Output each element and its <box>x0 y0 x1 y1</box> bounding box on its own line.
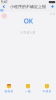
staticText: 设置 <box>49 12 55 15</box>
staticText: 已完成上报 <box>20 31 35 34</box>
staticText: 一般 <box>25 90 31 93</box>
button[interactable]: Back to app <box>0 9 4 12</box>
staticText: OK <box>23 16 32 25</box>
button[interactable]: Back <box>1 4 6 9</box>
button[interactable]: 很满意 <box>2 84 15 96</box>
button[interactable]: Menu <box>50 5 55 8</box>
button[interactable]: 一般 <box>21 84 34 96</box>
staticText: 不满意 <box>42 90 51 93</box>
staticText: 小程序的不确定上报 <box>10 4 46 9</box>
staticText: 9:41 <box>1 0 8 4</box>
staticText: 很满意 <box>4 90 13 93</box>
button[interactable]: 不满意 <box>40 84 53 96</box>
